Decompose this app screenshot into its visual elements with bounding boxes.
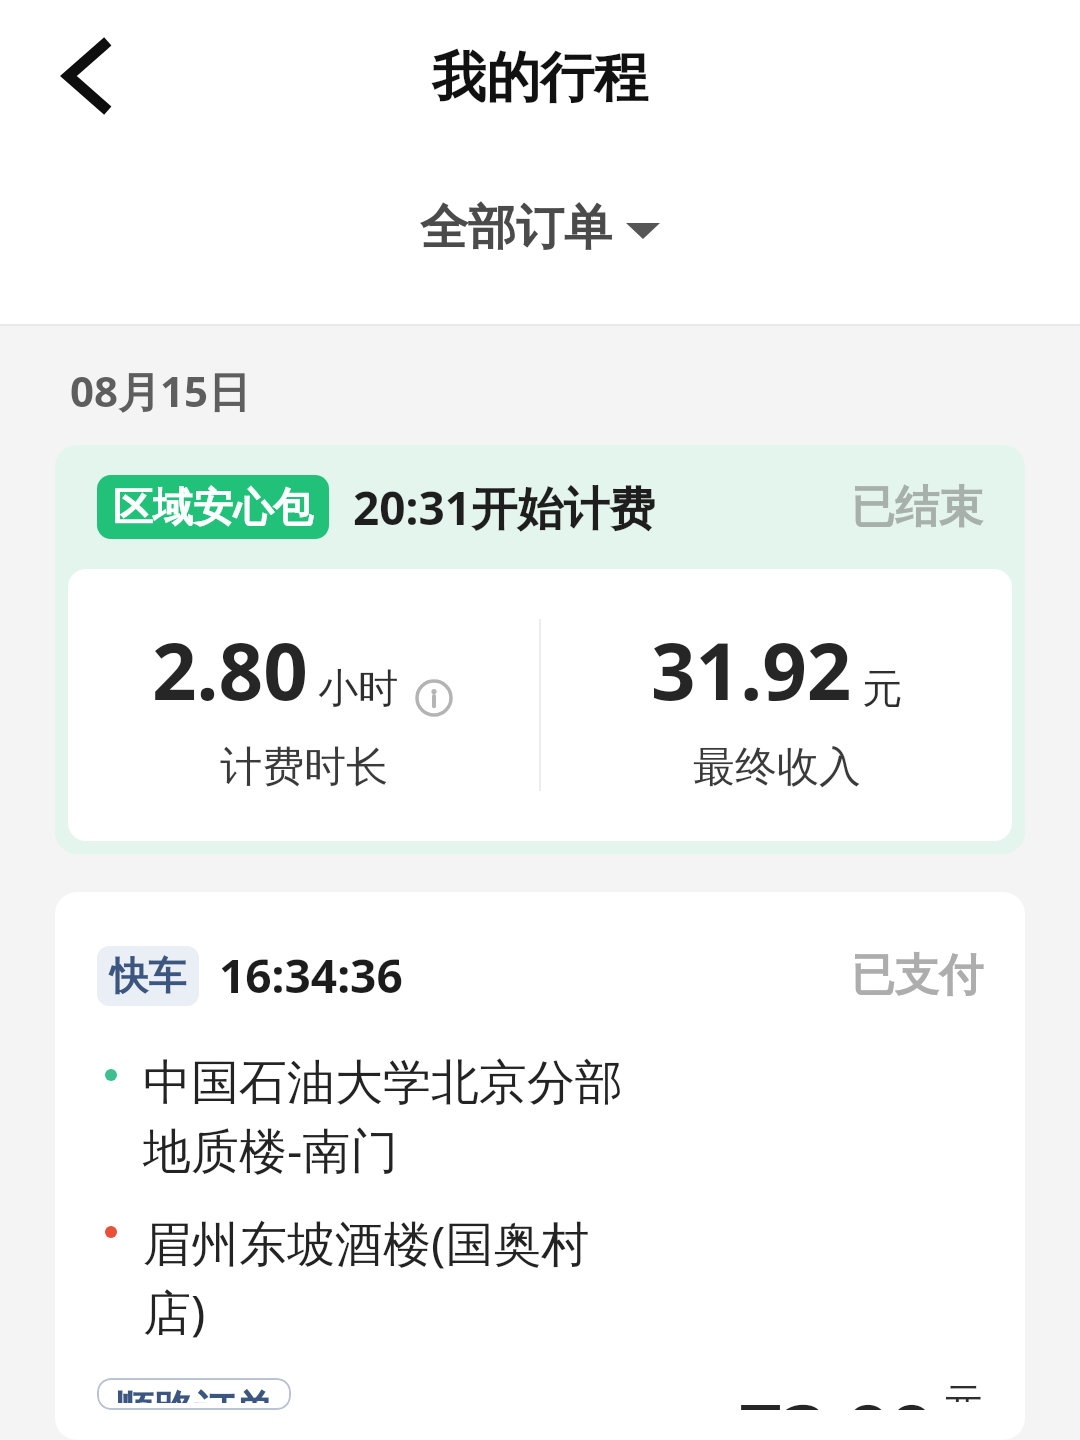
button[interactable]: 快车 [55, 892, 1025, 1440]
staticText: 20:31开始计费 [353, 476, 656, 539]
staticText: 中国石油大学北京分部 地质楼-南门 [143, 1053, 623, 1182]
button[interactable]: 区域安心包 [55, 445, 1025, 854]
staticText: 31.92 [651, 617, 852, 723]
staticText: 08月15日 [70, 362, 251, 419]
staticText: 2.80 [152, 617, 308, 723]
staticText: 已支付 [851, 948, 983, 1003]
staticText: 最终收入 [693, 741, 861, 794]
staticText: 小时 [318, 663, 398, 713]
staticText: 元 [943, 1378, 983, 1402]
staticText: 快车 [110, 952, 186, 1000]
staticText: 元 [862, 663, 902, 713]
staticText: 全部订单 [420, 198, 612, 258]
staticText: 区域安心包 [113, 482, 313, 532]
staticText: 计费时长 [220, 741, 388, 794]
staticText: 我的行程 [432, 44, 648, 112]
button[interactable]: Back [38, 28, 134, 124]
button[interactable]: 全部订单 [420, 198, 660, 258]
staticText: 已结束 [851, 480, 983, 535]
staticText: 顺路订单 [114, 1385, 274, 1403]
staticText: 16:34:36 [219, 944, 403, 1007]
staticText: 眉州东坡酒楼(国奥村 店) [143, 1210, 590, 1344]
staticText: 73.99 [739, 1378, 935, 1410]
